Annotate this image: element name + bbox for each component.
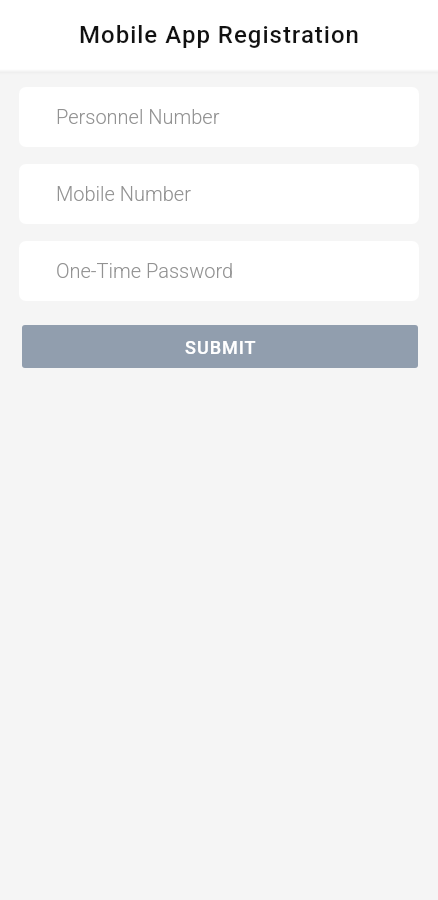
button[interactable]: Mobile Number — [19, 164, 419, 224]
button[interactable]: SUBMIT — [22, 325, 418, 368]
staticText: One-Time Password — [56, 259, 234, 282]
staticText: Mobile Number — [56, 182, 191, 205]
staticText: Mobile App Registration — [79, 21, 360, 49]
staticText: Personnel Number — [56, 105, 220, 128]
button[interactable]: One-Time Password — [19, 241, 419, 301]
staticText: SUBMIT — [185, 337, 257, 358]
button[interactable]: Personnel Number — [19, 87, 419, 147]
